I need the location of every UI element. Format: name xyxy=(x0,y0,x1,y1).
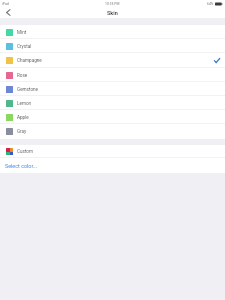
staticText: Rose xyxy=(17,73,28,78)
button[interactable]: Custom xyxy=(0,145,225,158)
button[interactable]: Select color... xyxy=(0,158,225,173)
button[interactable]: Mint xyxy=(0,25,225,39)
staticText: Mint xyxy=(17,30,27,35)
staticText: Select color... xyxy=(5,163,38,169)
button[interactable]: Lemon xyxy=(0,96,225,110)
staticText: Crystal xyxy=(17,44,32,49)
staticText: Gray xyxy=(17,129,27,134)
button[interactable]: Apple xyxy=(0,110,225,124)
button[interactable]: Champagne xyxy=(0,53,225,68)
staticText: Custom xyxy=(17,149,33,154)
staticText: iPad xyxy=(2,2,9,6)
button[interactable]: Crystal xyxy=(0,39,225,53)
staticText: Gemstone xyxy=(17,87,39,92)
button[interactable]: Gemstone xyxy=(0,82,225,96)
staticText: Skin xyxy=(107,10,118,16)
button[interactable]: Back xyxy=(0,7,15,18)
staticText: 10:18 PM xyxy=(105,2,120,6)
button[interactable]: Rose xyxy=(0,68,225,82)
staticText: Lemon xyxy=(17,101,32,106)
staticText: Apple xyxy=(17,115,29,120)
button[interactable]: Gray xyxy=(0,124,225,139)
staticText: Champagne xyxy=(17,58,42,63)
staticText: 64% xyxy=(207,2,214,6)
